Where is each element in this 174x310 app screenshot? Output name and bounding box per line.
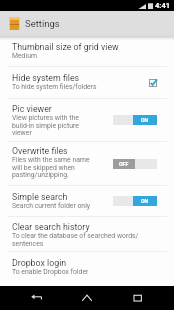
button[interactable]: Overwrite files (0, 142, 174, 185)
button[interactable]: Simple search (0, 186, 174, 216)
staticText: View pictures with the build‑in simple p… (12, 114, 98, 136)
staticText: Files with the same name will be skipped… (12, 156, 98, 178)
staticText: To enable Dropbox folder (12, 268, 89, 276)
button[interactable]: Hide system files (0, 67, 174, 98)
staticText: Thumbnail size of grid view (12, 42, 119, 52)
button[interactable]: Dropbox login (0, 252, 174, 286)
button[interactable]: Clear search history (0, 217, 174, 251)
staticText: ON (141, 198, 149, 204)
button[interactable]: Back (21, 286, 51, 310)
staticText: To hide system files/folders (12, 83, 97, 91)
staticText: Dropbox login (12, 258, 67, 268)
staticText: Medium (12, 52, 37, 60)
staticText: Settings (25, 18, 60, 29)
staticText: Hide system files (12, 73, 80, 83)
staticText: OFF (119, 161, 129, 167)
staticText: Pic viewer (12, 104, 52, 114)
button[interactable]: Thumbnail size of grid view (0, 36, 174, 66)
staticText: ON (141, 117, 149, 123)
staticText: To clear the database of searched words/… (12, 232, 160, 247)
staticText: 4:41 (155, 1, 171, 10)
button[interactable]: Pic viewer (0, 99, 174, 141)
button[interactable]: Recent apps (123, 286, 153, 310)
staticText: Search current folder only (12, 202, 91, 210)
staticText: Clear search history (12, 222, 90, 232)
staticText: Simple search (12, 192, 68, 202)
button[interactable]: Home (72, 286, 102, 310)
staticText: Overwrite files (12, 146, 68, 156)
